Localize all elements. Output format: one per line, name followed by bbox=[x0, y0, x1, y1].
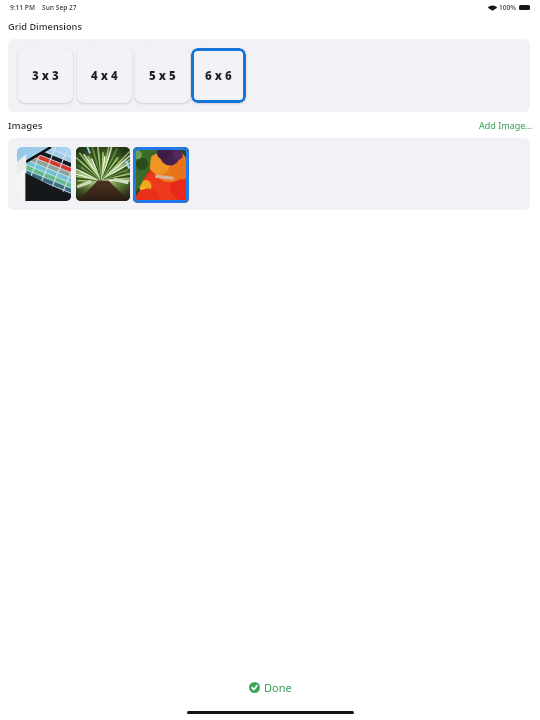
button[interactable]: Image 0 bbox=[17, 147, 71, 201]
button[interactable]: Image 1 bbox=[76, 147, 130, 201]
staticText: 100% bbox=[499, 3, 517, 12]
staticText: 3 x 3 bbox=[32, 68, 59, 84]
button[interactable]: Done bbox=[245, 677, 296, 698]
staticText: 5 x 5 bbox=[149, 68, 176, 84]
staticText: 6 x 6 bbox=[205, 68, 232, 84]
staticText: 4 x 4 bbox=[91, 68, 118, 84]
staticText: Add Image... bbox=[479, 119, 533, 131]
button[interactable]: 4 x 4 bbox=[77, 48, 132, 103]
staticText: Sun Sep 27 bbox=[42, 3, 77, 12]
button[interactable]: 6 x 6 bbox=[191, 48, 246, 103]
button[interactable]: Add Image... bbox=[477, 118, 535, 132]
staticText: Grid Dimensions bbox=[8, 20, 82, 33]
staticText: Done bbox=[264, 680, 292, 695]
button[interactable]: 3 x 3 bbox=[18, 48, 73, 103]
staticText: 9:11 PM bbox=[10, 3, 36, 12]
staticText: Images bbox=[8, 119, 43, 132]
button[interactable]: 5 x 5 bbox=[135, 48, 190, 103]
button[interactable]: Image 2 bbox=[133, 147, 189, 203]
